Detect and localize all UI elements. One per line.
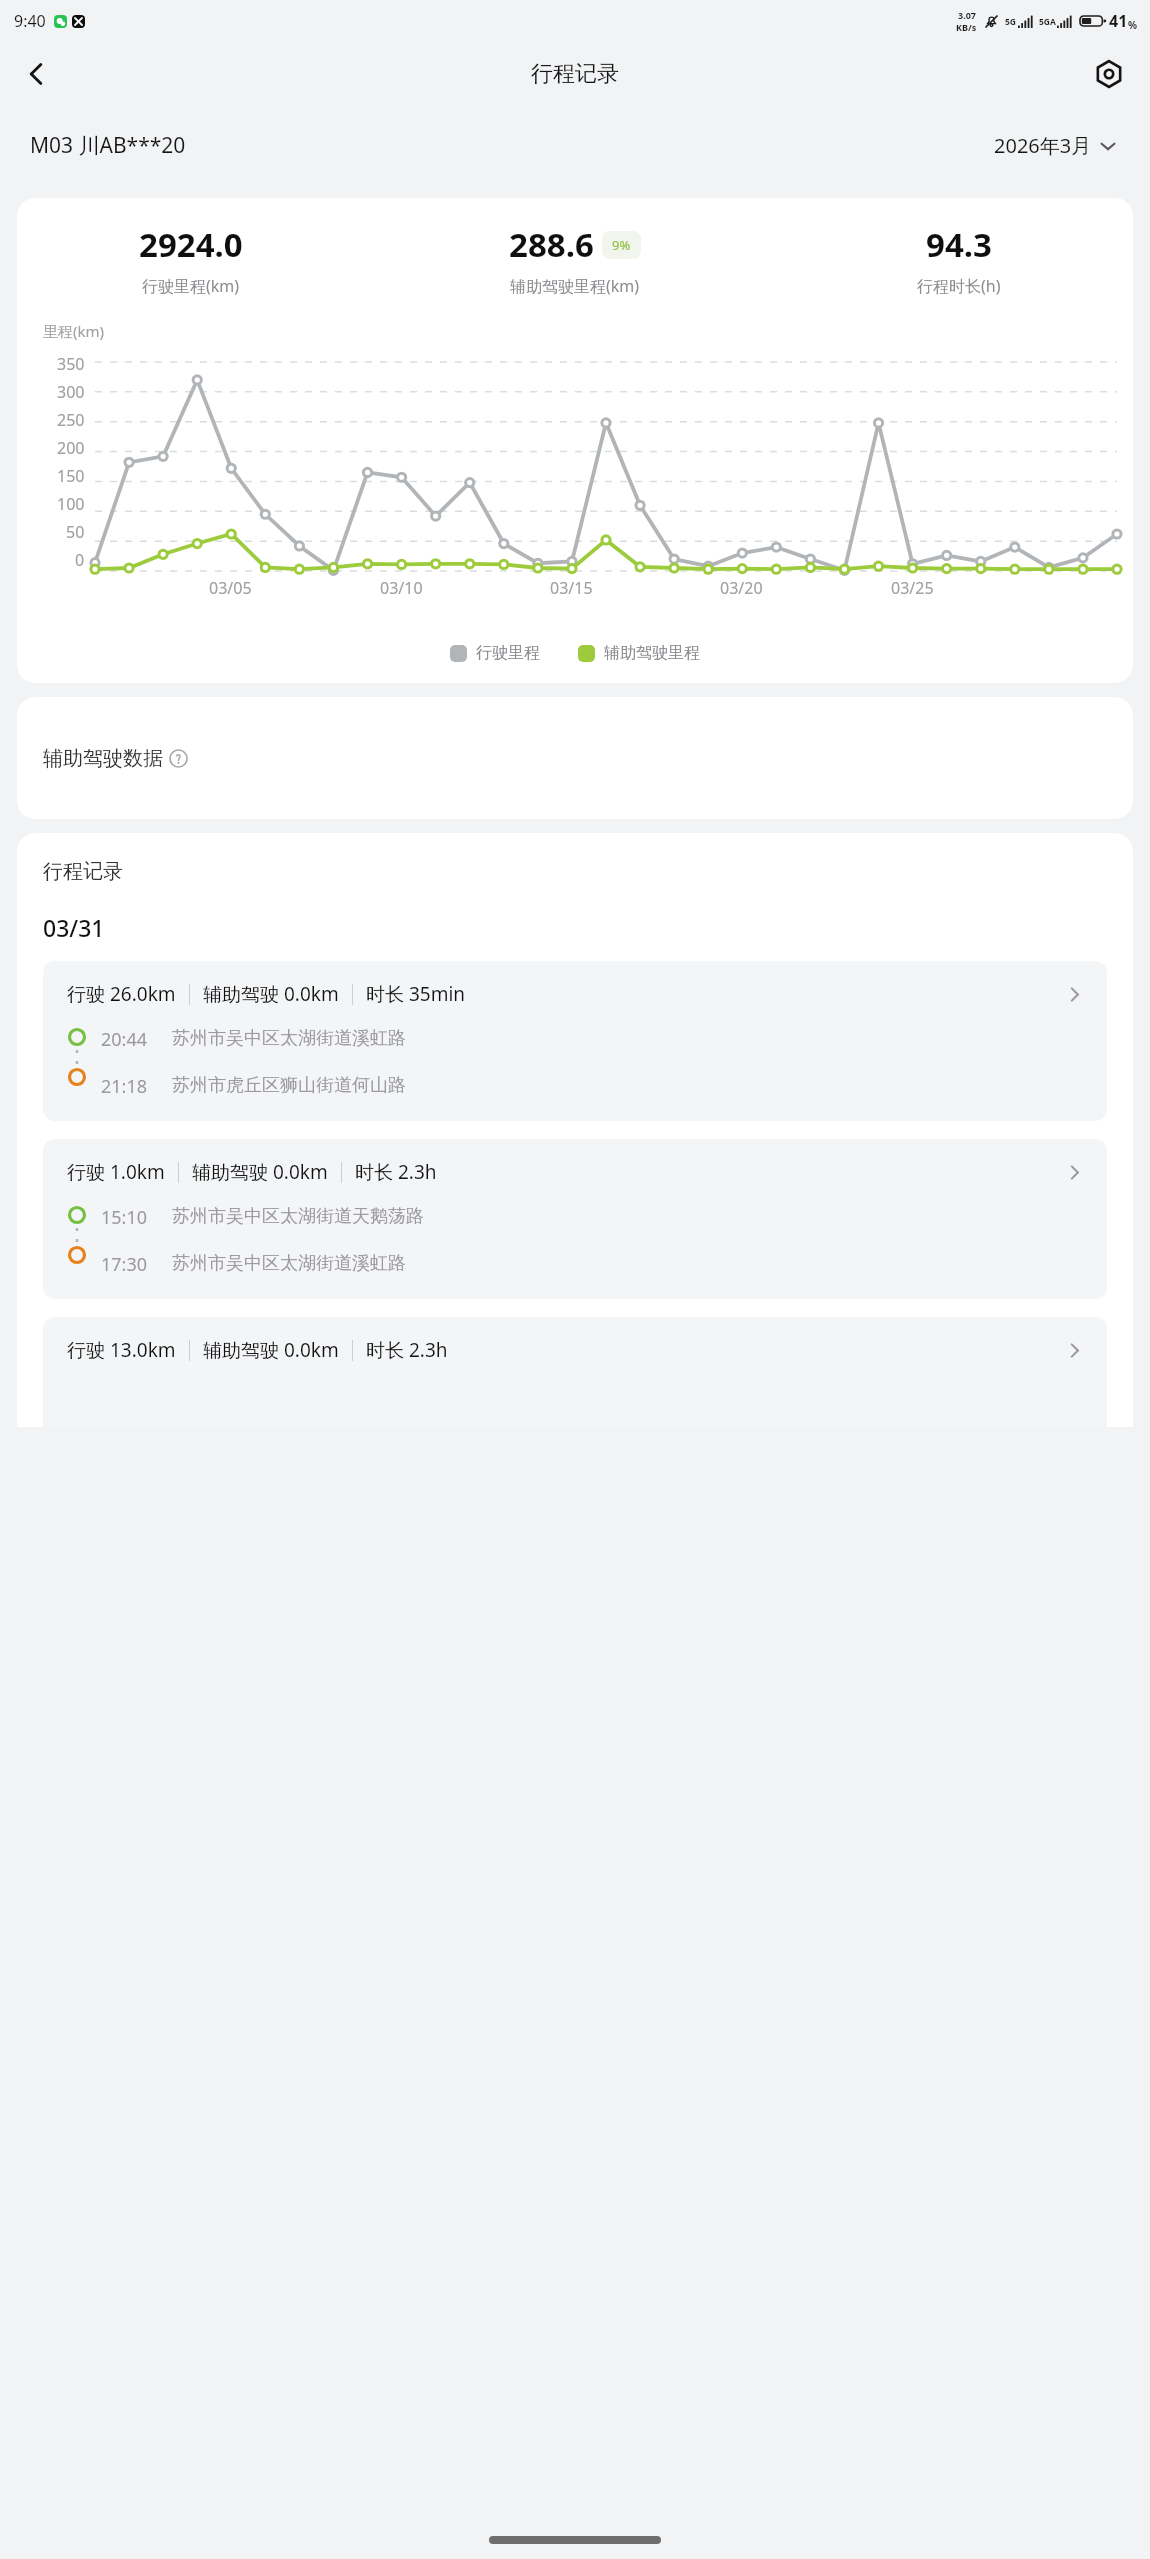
staticText: % (1128, 18, 1138, 32)
button[interactable]: 辅助驾驶数据 (17, 697, 1133, 819)
staticText: 9:40 (14, 10, 46, 32)
staticText: 288.6 (509, 222, 594, 267)
staticText: 时长 2.3h (366, 1337, 448, 1363)
staticText: 21:18 (101, 1074, 148, 1099)
staticText: 行程时长(h) (917, 275, 1001, 297)
staticText: 41 (1109, 10, 1128, 32)
button[interactable]: Settings (1082, 47, 1136, 101)
staticText: 03/05 (209, 577, 252, 599)
staticText: 行程记录 (43, 859, 123, 884)
staticText: 03/10 (380, 577, 423, 599)
button[interactable]: 2026年3月 (990, 128, 1120, 163)
staticText: 03/15 (550, 577, 593, 599)
staticText: 里程(km) (43, 321, 105, 341)
staticText: 250 (57, 409, 85, 431)
staticText: 时长 2.3h (355, 1159, 437, 1185)
staticText: 苏州市吴中区太湖街道天鹅荡路 (172, 1205, 424, 1228)
staticText: 行驶里程(km) (142, 275, 240, 297)
staticText: 辅助驾驶数据 (43, 746, 163, 771)
staticText: 苏州市吴中区太湖街道溪虹路 (172, 1027, 406, 1050)
staticText: 行驶里程 (476, 643, 540, 663)
staticText: 300 (57, 381, 85, 403)
button[interactable]: 行驶里程 (450, 643, 540, 663)
staticText: 辅助驾驶 0.0km (203, 981, 339, 1007)
staticText: 94.3 (926, 222, 992, 267)
staticText: 辅助驾驶里程 (604, 643, 700, 663)
staticText: 2026年3月 (994, 132, 1092, 159)
button[interactable]: Back (10, 47, 64, 101)
button[interactable]: 行驶 13.0km (43, 1317, 1107, 1427)
staticText: 苏州市虎丘区狮山街道何山路 (172, 1074, 406, 1097)
staticText: 17:30 (101, 1252, 148, 1277)
button[interactable]: 辅助驾驶里程 (578, 643, 700, 663)
staticText: 15:10 (101, 1205, 148, 1230)
staticText: 行驶 13.0km (67, 1337, 176, 1363)
staticText: 行驶 26.0km (67, 981, 176, 1007)
staticText: 03/25 (891, 577, 934, 599)
staticText: 行驶 1.0km (67, 1159, 165, 1185)
staticText: 辅助驾驶 0.0km (192, 1159, 328, 1185)
staticText: KB/s (956, 21, 977, 33)
staticText: 辅助驾驶 0.0km (203, 1337, 339, 1363)
staticText: 3.07 (958, 9, 976, 21)
staticText: 5G (1005, 16, 1017, 28)
staticText: 20:44 (101, 1027, 148, 1052)
staticText: 9% (612, 236, 631, 254)
staticText: 0 (75, 549, 85, 571)
staticText: 03/31 (43, 912, 105, 943)
staticText: 行程记录 (531, 60, 619, 88)
staticText: 2924.0 (139, 222, 243, 267)
staticText: 50 (66, 521, 85, 543)
button[interactable]: M03 川AB***20 (30, 131, 186, 160)
button[interactable]: 行驶 26.0km (43, 961, 1107, 1121)
staticText: 200 (57, 437, 85, 459)
staticText: 350 (57, 353, 85, 375)
staticText: 150 (57, 465, 85, 487)
staticText: 03/20 (720, 577, 763, 599)
staticText: 100 (57, 493, 85, 515)
staticText: 辅助驾驶里程(km) (510, 275, 640, 297)
staticText: 时长 35min (366, 981, 466, 1007)
staticText: 苏州市吴中区太湖街道溪虹路 (172, 1252, 406, 1275)
button[interactable]: 行驶 1.0km (43, 1139, 1107, 1299)
staticText: 5GA (1039, 16, 1056, 28)
